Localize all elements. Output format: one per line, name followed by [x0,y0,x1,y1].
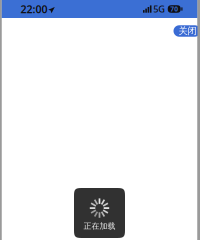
staticText: 5G [153,3,165,15]
button[interactable]: 关闭 [173,25,200,37]
staticText: 正在加载 [83,221,115,231]
staticText: 70 [170,5,178,13]
staticText: 关闭 [178,25,196,37]
staticText: 22:00 [20,2,47,16]
